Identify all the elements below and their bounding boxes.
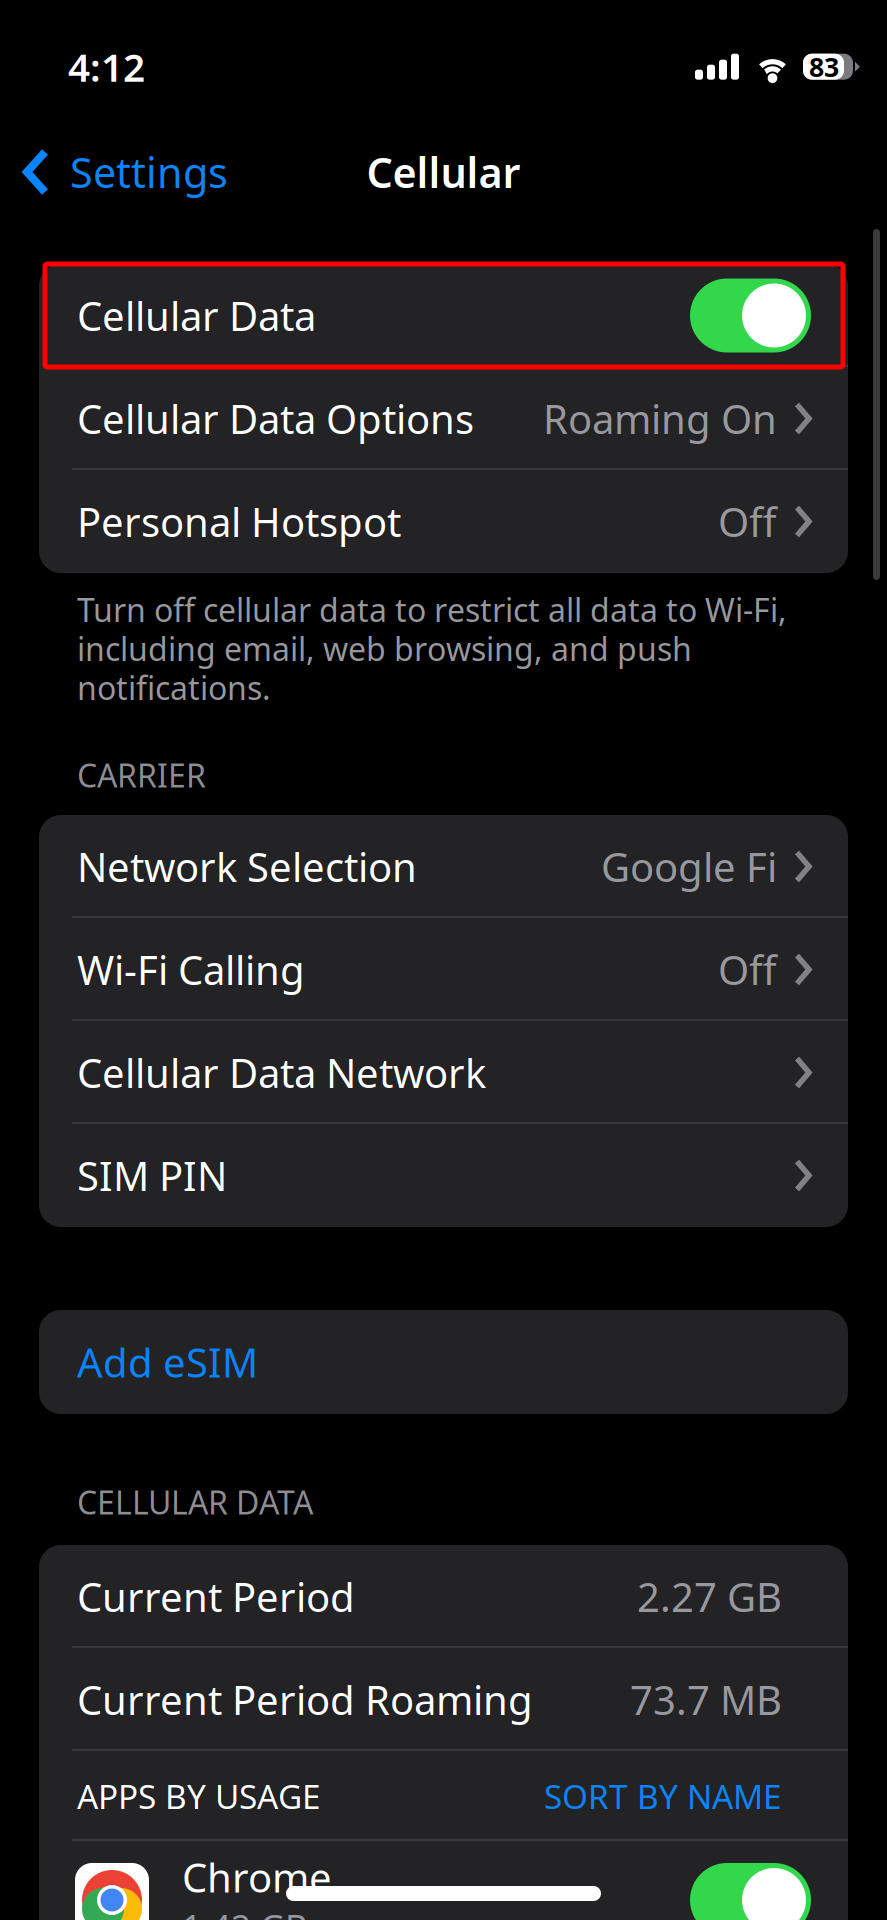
staticText: Current Period — [77, 1570, 355, 1623]
button[interactable]: SIM PIN — [39, 1124, 848, 1227]
button[interactable]: Network Selection — [39, 815, 848, 918]
staticText: notifications. — [77, 666, 271, 709]
staticText: SORT BY NAME — [544, 1774, 782, 1818]
staticText: Cellular — [366, 145, 520, 199]
staticText: Off — [718, 943, 777, 996]
staticText: Settings — [70, 145, 228, 199]
button[interactable]: Wi-Fi Calling — [39, 918, 848, 1021]
button[interactable]: Add eSIM — [39, 1310, 848, 1414]
staticText: Network Selection — [77, 840, 417, 893]
staticText: Add eSIM — [77, 1335, 258, 1388]
staticText: CARRIER — [77, 754, 206, 796]
staticText: Personal Hotspot — [77, 495, 401, 548]
staticText: Cellular Data Network — [77, 1046, 486, 1099]
staticText: Google Fi — [601, 840, 777, 893]
staticText: Turn off cellular data to restrict all d… — [77, 588, 787, 631]
staticText: SIM PIN — [77, 1149, 227, 1202]
button[interactable]: Personal Hotspot — [39, 470, 848, 573]
staticText: Cellular Data — [77, 289, 316, 342]
staticText: CELLULAR DATA — [77, 1481, 313, 1523]
staticText: including email, web browsing, and push — [77, 627, 692, 670]
staticText: Wi-Fi Calling — [77, 943, 305, 996]
button[interactable]: SORT BY NAME — [544, 1774, 782, 1818]
staticText: Chrome — [182, 1850, 332, 1903]
staticText: APPS BY USAGE — [77, 1774, 321, 1818]
staticText: 2.27 GB — [637, 1570, 782, 1623]
button[interactable]: Chrome — [39, 1841, 848, 1920]
staticText: Roaming On — [543, 392, 777, 445]
staticText: Off — [718, 495, 777, 548]
staticText: 1.42 GB — [182, 1903, 308, 1920]
staticText: 4:12 — [68, 41, 145, 92]
button[interactable]: Cellular Data — [39, 264, 848, 367]
staticText: Current Period Roaming — [77, 1673, 533, 1726]
button[interactable]: Cellular Data Network — [39, 1021, 848, 1124]
button[interactable]: Settings — [0, 139, 228, 205]
staticText: Cellular Data Options — [77, 392, 474, 445]
button[interactable]: Cellular Data Options — [39, 367, 848, 470]
staticText: 83 — [809, 49, 839, 84]
staticText: 73.7 MB — [630, 1673, 782, 1726]
